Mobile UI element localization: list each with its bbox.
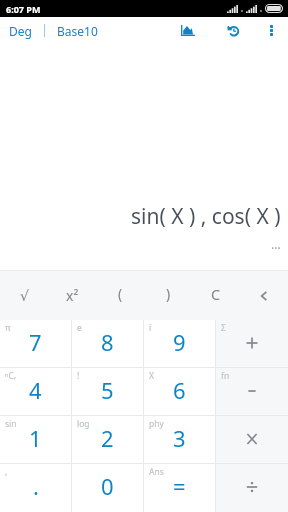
staticText: sin( X ) , cos( X ) — [131, 202, 281, 231]
staticText: ( — [118, 284, 123, 303]
button[interactable]: ) — [144, 271, 192, 320]
staticText: 8 — [101, 327, 114, 357]
staticText: Σ — [221, 322, 226, 334]
button[interactable]: ! — [72, 368, 143, 415]
staticText: Base10 — [57, 23, 98, 39]
staticText: C — [211, 284, 221, 304]
button[interactable]: Ans — [144, 464, 215, 512]
staticText: 9 — [173, 327, 186, 357]
button[interactable] — [216, 464, 288, 512]
staticText: = — [173, 471, 186, 501]
button[interactable]: x² — [48, 271, 96, 320]
staticText: ! — [77, 370, 80, 382]
staticText: 0 — [101, 471, 114, 501]
staticText: π — [5, 322, 11, 334]
staticText: 2 — [101, 423, 114, 453]
button[interactable]: sin — [0, 416, 71, 463]
staticText: √ — [20, 288, 29, 304]
button[interactable]: π — [0, 320, 71, 367]
staticText: 5 — [101, 375, 114, 405]
staticText: Ans — [149, 466, 164, 478]
button[interactable]: phy — [144, 416, 215, 463]
staticText: sin — [5, 418, 17, 430]
button[interactable]: fn — [216, 368, 288, 415]
staticText: 4 — [29, 375, 42, 405]
button[interactable]: C — [192, 271, 240, 320]
staticText: x² — [66, 286, 79, 305]
button[interactable] — [216, 416, 288, 463]
staticText: , — [5, 466, 8, 478]
staticText: 3 — [173, 423, 186, 453]
button[interactable]: Deg — [0, 17, 44, 44]
staticText: i — [149, 322, 152, 334]
staticText: 7 — [29, 327, 42, 357]
button[interactable]: Σ — [216, 320, 288, 367]
button[interactable]: i — [144, 320, 215, 367]
button[interactable]: e — [72, 320, 143, 367]
button[interactable]: More options — [256, 17, 287, 44]
staticText: ⁿCᵣ — [5, 370, 17, 382]
staticText: ) — [166, 284, 171, 303]
staticText: ... — [271, 236, 281, 252]
staticText: X — [149, 370, 154, 382]
staticText: phy — [149, 418, 164, 430]
button[interactable]: ⁿCᵣ — [0, 368, 71, 415]
button[interactable]: Graph — [170, 17, 206, 44]
button[interactable]: , — [0, 464, 71, 512]
button[interactable]: ( — [96, 271, 144, 320]
staticText: 1 — [29, 423, 42, 453]
staticText: 6:07 PM — [6, 3, 41, 15]
staticText: e — [77, 322, 82, 334]
button[interactable]: 0 — [72, 464, 143, 512]
button[interactable]: √ — [0, 271, 48, 320]
button[interactable]: Base10 — [45, 17, 107, 44]
button[interactable] — [240, 271, 288, 320]
staticText: . — [33, 471, 39, 501]
button[interactable]: X — [144, 368, 215, 415]
staticText: 6 — [173, 375, 186, 405]
staticText: log — [77, 418, 90, 430]
button[interactable]: History — [215, 17, 251, 44]
button[interactable]: log — [72, 416, 143, 463]
staticText: Deg — [9, 23, 32, 39]
staticText: fn — [221, 370, 230, 382]
